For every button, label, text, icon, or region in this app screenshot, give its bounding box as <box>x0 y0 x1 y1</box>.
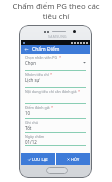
staticText: LƯU LẠI <box>32 157 48 162</box>
staticText: Ngày chấm <box>25 134 45 139</box>
staticText: * <box>51 105 54 110</box>
staticText: Ghi chú <box>25 120 38 125</box>
staticText: Chấm Điểm <box>32 46 60 53</box>
other: Back <box>24 47 29 52</box>
button[interactable]: Nhóm tiêu chí <box>25 71 86 88</box>
staticText: Lịch sự <box>25 77 40 83</box>
staticText: Chọn nhân viên PG <box>25 55 58 60</box>
staticText: Chọn <box>25 60 36 66</box>
button[interactable]: Ngày chấm <box>25 133 86 146</box>
button[interactable]: Điểm đánh giá <box>25 104 86 119</box>
staticText: * <box>50 72 53 77</box>
staticText: * <box>59 55 62 60</box>
staticText: Tốt <box>25 125 32 131</box>
staticText: * <box>78 89 81 94</box>
button[interactable]: Back <box>24 46 60 53</box>
other: Home <box>46 167 68 174</box>
staticText: Nội dung tiêu chí cần đánh giá <box>25 89 77 94</box>
staticText: 10 <box>25 110 31 116</box>
staticText: Nhóm tiêu chí <box>25 72 49 77</box>
button[interactable]: LƯU LẠI <box>21 153 55 165</box>
button[interactable]: Nội dung tiêu chí cần đánh giá <box>25 88 86 104</box>
button[interactable]: Chọn nhân viên PG <box>25 54 86 71</box>
staticText: SAMSUNG <box>48 34 67 39</box>
button[interactable]: HỦY <box>56 153 90 165</box>
staticText: HỦY <box>71 157 80 162</box>
button[interactable]: Ghi chú <box>25 119 86 133</box>
staticText: Chấm điểm PG theo các tiêu chí <box>7 1 105 21</box>
staticText: 01/12 <box>25 139 37 145</box>
staticText: Điểm đánh giá <box>25 105 50 110</box>
